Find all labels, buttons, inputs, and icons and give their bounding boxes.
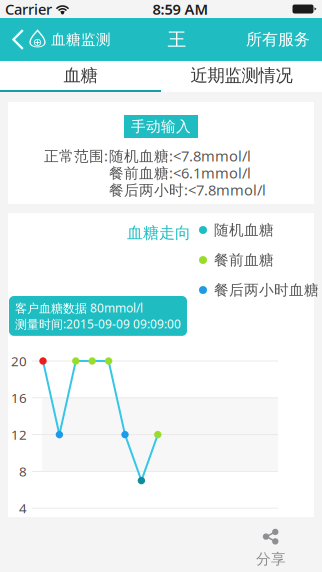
staticText: 餐后两小时:<7.8mmol/l — [109, 180, 266, 199]
staticText: 近期监测情况 — [190, 65, 292, 86]
staticText: 餐前血糖 — [214, 251, 274, 269]
staticText: 餐前血糖:<6.1mmol/l — [109, 163, 251, 182]
staticText: 16 — [11, 389, 27, 407]
button[interactable]: 所有服务 — [237, 18, 322, 61]
staticText: 所有服务 — [246, 30, 310, 49]
staticText: 随机血糖:<7.8mmol/l — [109, 146, 251, 165]
staticText: 正常范围: — [44, 146, 108, 165]
button[interactable]: 分享 — [246, 525, 296, 572]
staticText: 8 — [19, 462, 27, 480]
staticText: 手动输入 — [131, 117, 191, 135]
staticText: 12 — [11, 426, 27, 443]
staticText: 8:59 AM — [152, 0, 208, 19]
staticText: 分享 — [256, 550, 286, 568]
button[interactable]: 返回 血糖监测 — [0, 18, 117, 61]
staticText: 血糖 — [63, 65, 97, 86]
staticText: 测量时间:2015-09-09 09:09:00 — [15, 316, 181, 332]
staticText: 客户血糖数据 80mmol/l — [15, 300, 143, 316]
staticText: 20 — [11, 352, 27, 370]
staticText: 王 — [167, 28, 186, 51]
staticText: 血糖监测 — [51, 30, 111, 48]
staticText: 4 — [19, 499, 27, 517]
button[interactable]: 近期监测情况 — [161, 61, 322, 90]
staticText: 随机血糖 — [214, 221, 274, 239]
staticText: Carrier — [5, 0, 52, 19]
button[interactable]: 手动输入 — [124, 115, 198, 138]
staticText: 血糖走向 — [127, 223, 191, 243]
staticText: 餐后两小时血糖 — [214, 281, 319, 299]
button[interactable]: 血糖 — [0, 61, 161, 90]
